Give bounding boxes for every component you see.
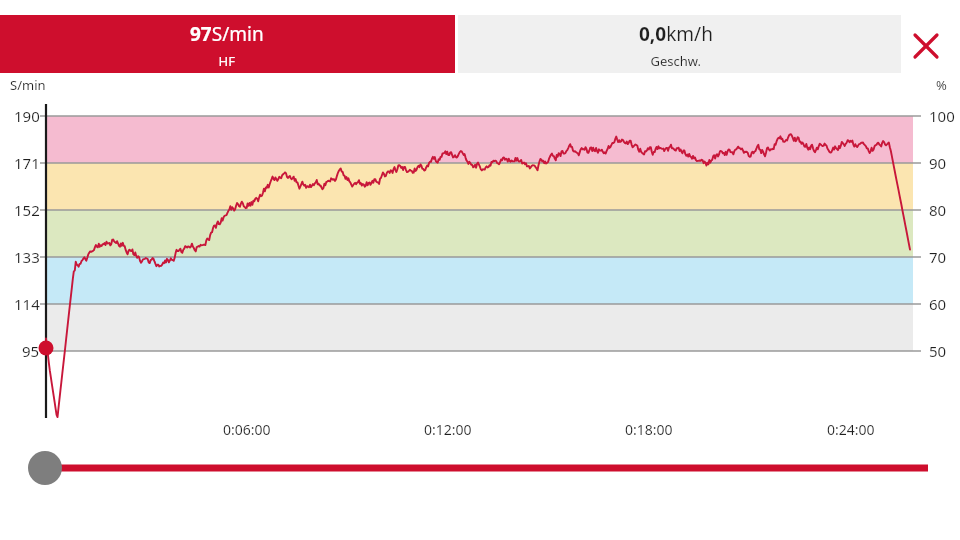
button[interactable]: Scrub position	[24, 447, 66, 489]
button[interactable]: Heart rate 97 S/min	[0, 15, 455, 73]
button[interactable]: Close	[900, 20, 952, 72]
button[interactable]: Speed 0,0 km/h	[458, 15, 901, 73]
